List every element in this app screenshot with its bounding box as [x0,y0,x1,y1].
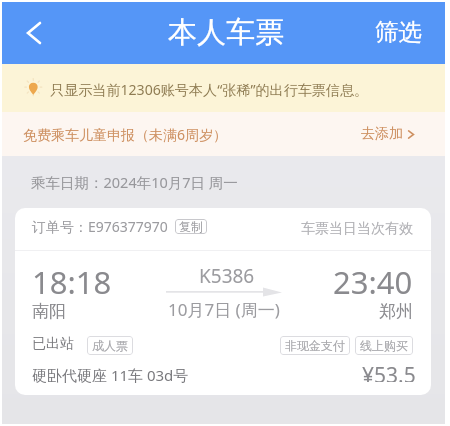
staticText: 硬卧代硬座 11车 03d号 [32,365,189,385]
staticText: 复制 [179,219,203,234]
staticText: 南阳 [32,301,66,322]
staticText: 郑州 [379,301,413,322]
staticText: K5386 [199,263,255,289]
staticText: 10月7日 (周一) [168,298,280,321]
staticText: 乘车日期：2024年10月7日 周一 [31,172,238,192]
staticText: 非现金支付 [285,338,345,353]
staticText: 线上购买 [360,338,408,353]
staticText: 车票当日当次有效 [301,220,413,238]
staticText: 本人车票 [168,14,284,51]
staticText: 去添加 [361,125,403,143]
staticText: ¥53.5 [362,361,416,382]
button[interactable]: 订单号：E976377970 [15,208,431,395]
button[interactable]: 筛选 [362,8,445,58]
staticText: 免费乘车儿童申报（未满6周岁） [23,125,228,144]
button[interactable]: 复制 [175,219,207,234]
staticText: 18:18 [32,261,112,303]
staticText: 订单号：E976377970 [32,217,168,236]
staticText: 已出站 [32,335,74,353]
staticText: 成人票 [92,338,128,353]
button[interactable]: Back [12,11,56,55]
staticText: 筛选 [375,17,422,47]
button[interactable]: 免费乘车儿童申报（未满6周岁） [2,112,445,156]
staticText: 23:40 [333,261,413,303]
staticText: 只显示当前12306账号本人“张稀”的出行车票信息。 [50,80,369,99]
